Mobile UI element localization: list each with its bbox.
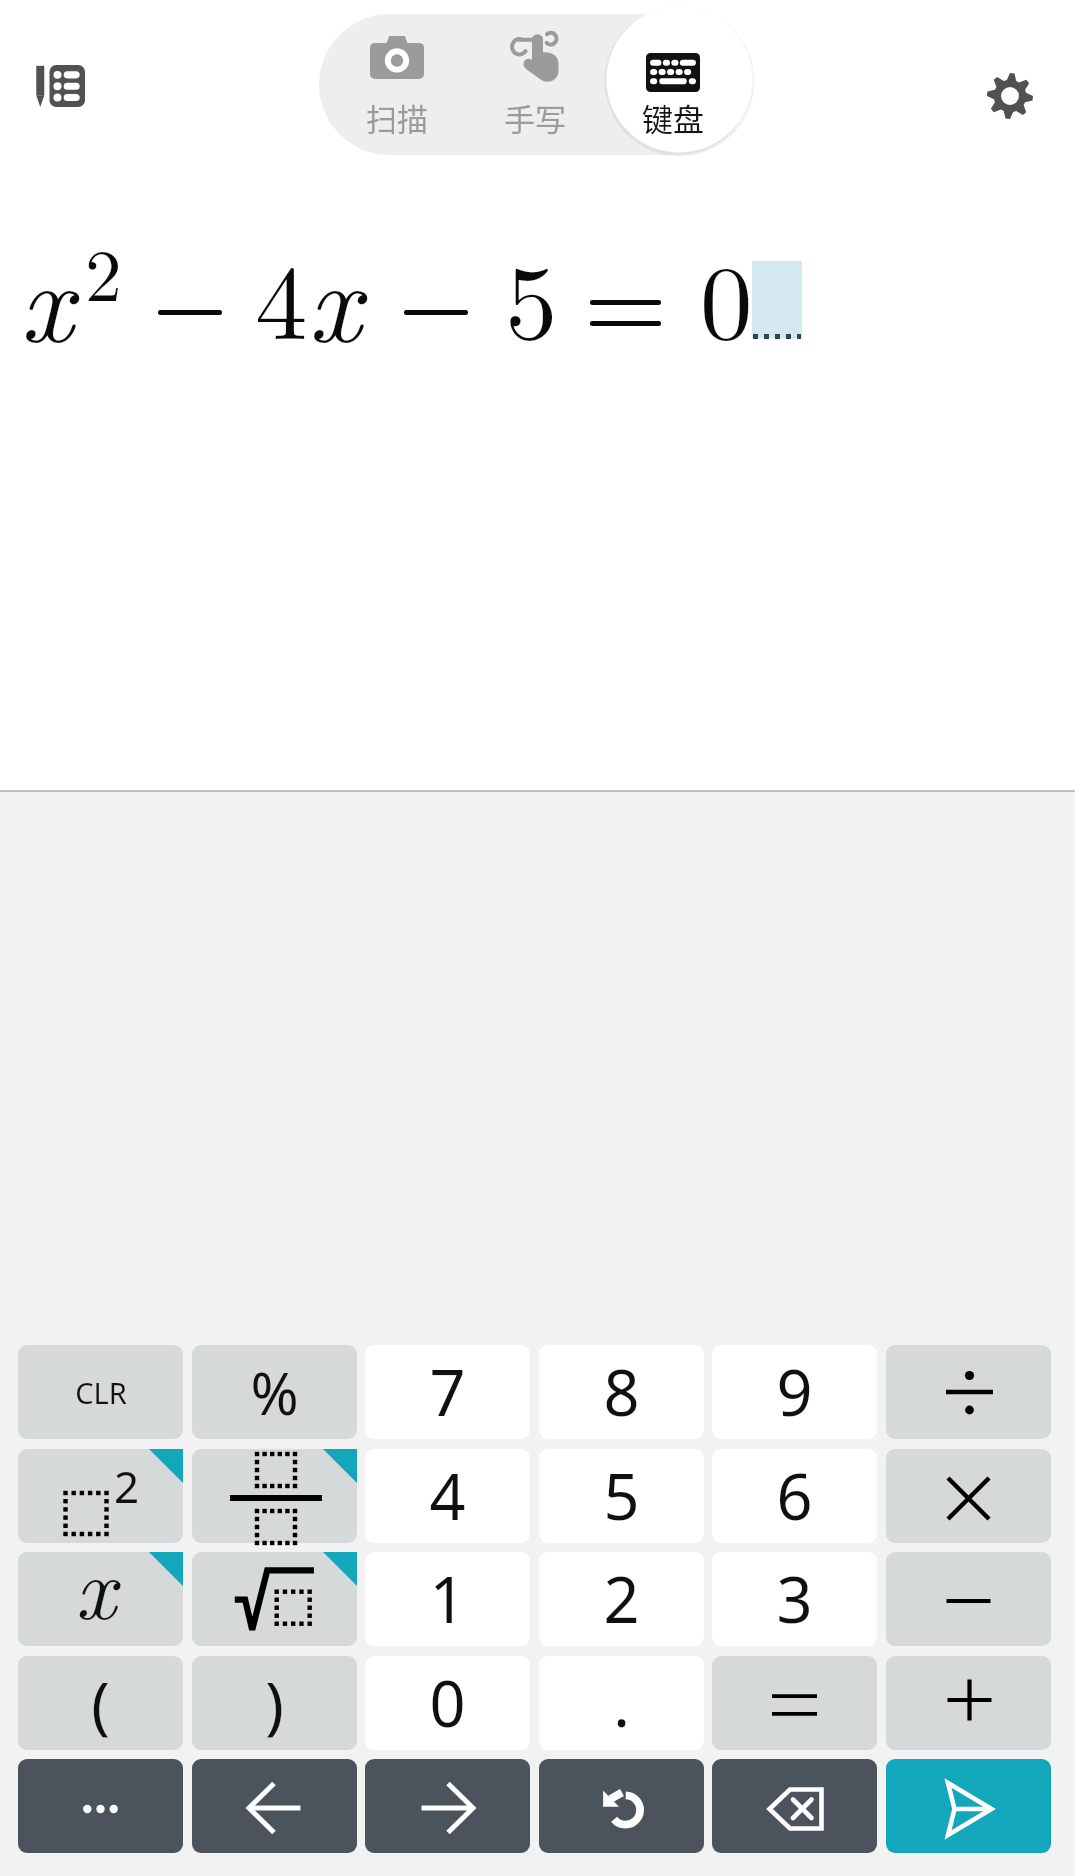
button[interactable]: 5 [539,1449,704,1543]
staticText: . [613,1661,630,1745]
staticText: 5 [505,221,558,370]
button[interactable]: Fraction [192,1449,357,1543]
button[interactable]: Backspace [712,1759,877,1853]
staticText: 扫描 [335,95,459,140]
staticText: ) [265,1661,284,1745]
button[interactable]: 6 [712,1449,877,1543]
button[interactable]: Minus [886,1552,1051,1646]
button[interactable]: Power [18,1449,183,1543]
button[interactable]: . [539,1656,704,1750]
staticText: 7 [429,1349,466,1435]
button[interactable]: Divide [886,1345,1051,1439]
staticText: % [250,1353,299,1432]
button[interactable]: x [18,1552,183,1646]
staticText: 0 [429,1660,466,1746]
button[interactable]: Settings [962,48,1058,144]
button[interactable]: 2 [539,1552,704,1646]
button[interactable]: Submit [886,1759,1051,1853]
staticText: 8 [603,1349,640,1435]
staticText: 6 [776,1453,813,1539]
staticText: 2 [603,1556,640,1642]
button[interactable]: 0 [365,1656,530,1750]
button[interactable]: ) [192,1656,357,1750]
staticText: 2 [114,1456,140,1516]
button[interactable]: History [12,40,108,132]
staticText: 1 [429,1556,466,1642]
staticText: 3 [776,1556,813,1642]
button[interactable]: Square root [192,1552,357,1646]
button[interactable]: 4 [365,1449,530,1543]
staticText: 4 [429,1453,466,1539]
staticText: 9 [776,1349,813,1435]
staticText: 手写 [473,95,597,140]
staticText: ( [91,1661,110,1745]
staticText: x [20,213,74,375]
button[interactable]: 1 [365,1552,530,1646]
button[interactable]: Left [192,1759,357,1853]
staticText: 2 [85,218,122,322]
button[interactable]: 手写 [466,14,604,155]
button[interactable]: 9 [712,1345,877,1439]
button[interactable]: 扫描 [328,14,466,155]
button[interactable]: 3 [712,1552,877,1646]
staticText: CLR [75,1373,127,1412]
button[interactable]: Multiply [886,1449,1051,1543]
button[interactable]: CLR [18,1345,183,1439]
button[interactable]: Undo [539,1759,704,1853]
button[interactable]: Plus [886,1656,1051,1750]
button[interactable]: 7 [365,1345,530,1439]
button[interactable]: Right [365,1759,530,1853]
button[interactable]: Equals [712,1656,877,1750]
button[interactable]: More [18,1759,183,1853]
button[interactable]: ( [18,1656,183,1750]
button[interactable]: 键盘 [604,14,742,155]
staticText: x [308,213,362,375]
button[interactable]: % [192,1345,357,1439]
staticText: 5 [603,1453,640,1539]
staticText: 0 [700,221,753,370]
button[interactable]: 8 [539,1345,704,1439]
staticText: 4 [255,221,308,370]
staticText: 键盘 [611,95,735,140]
staticText: x [75,1520,116,1645]
